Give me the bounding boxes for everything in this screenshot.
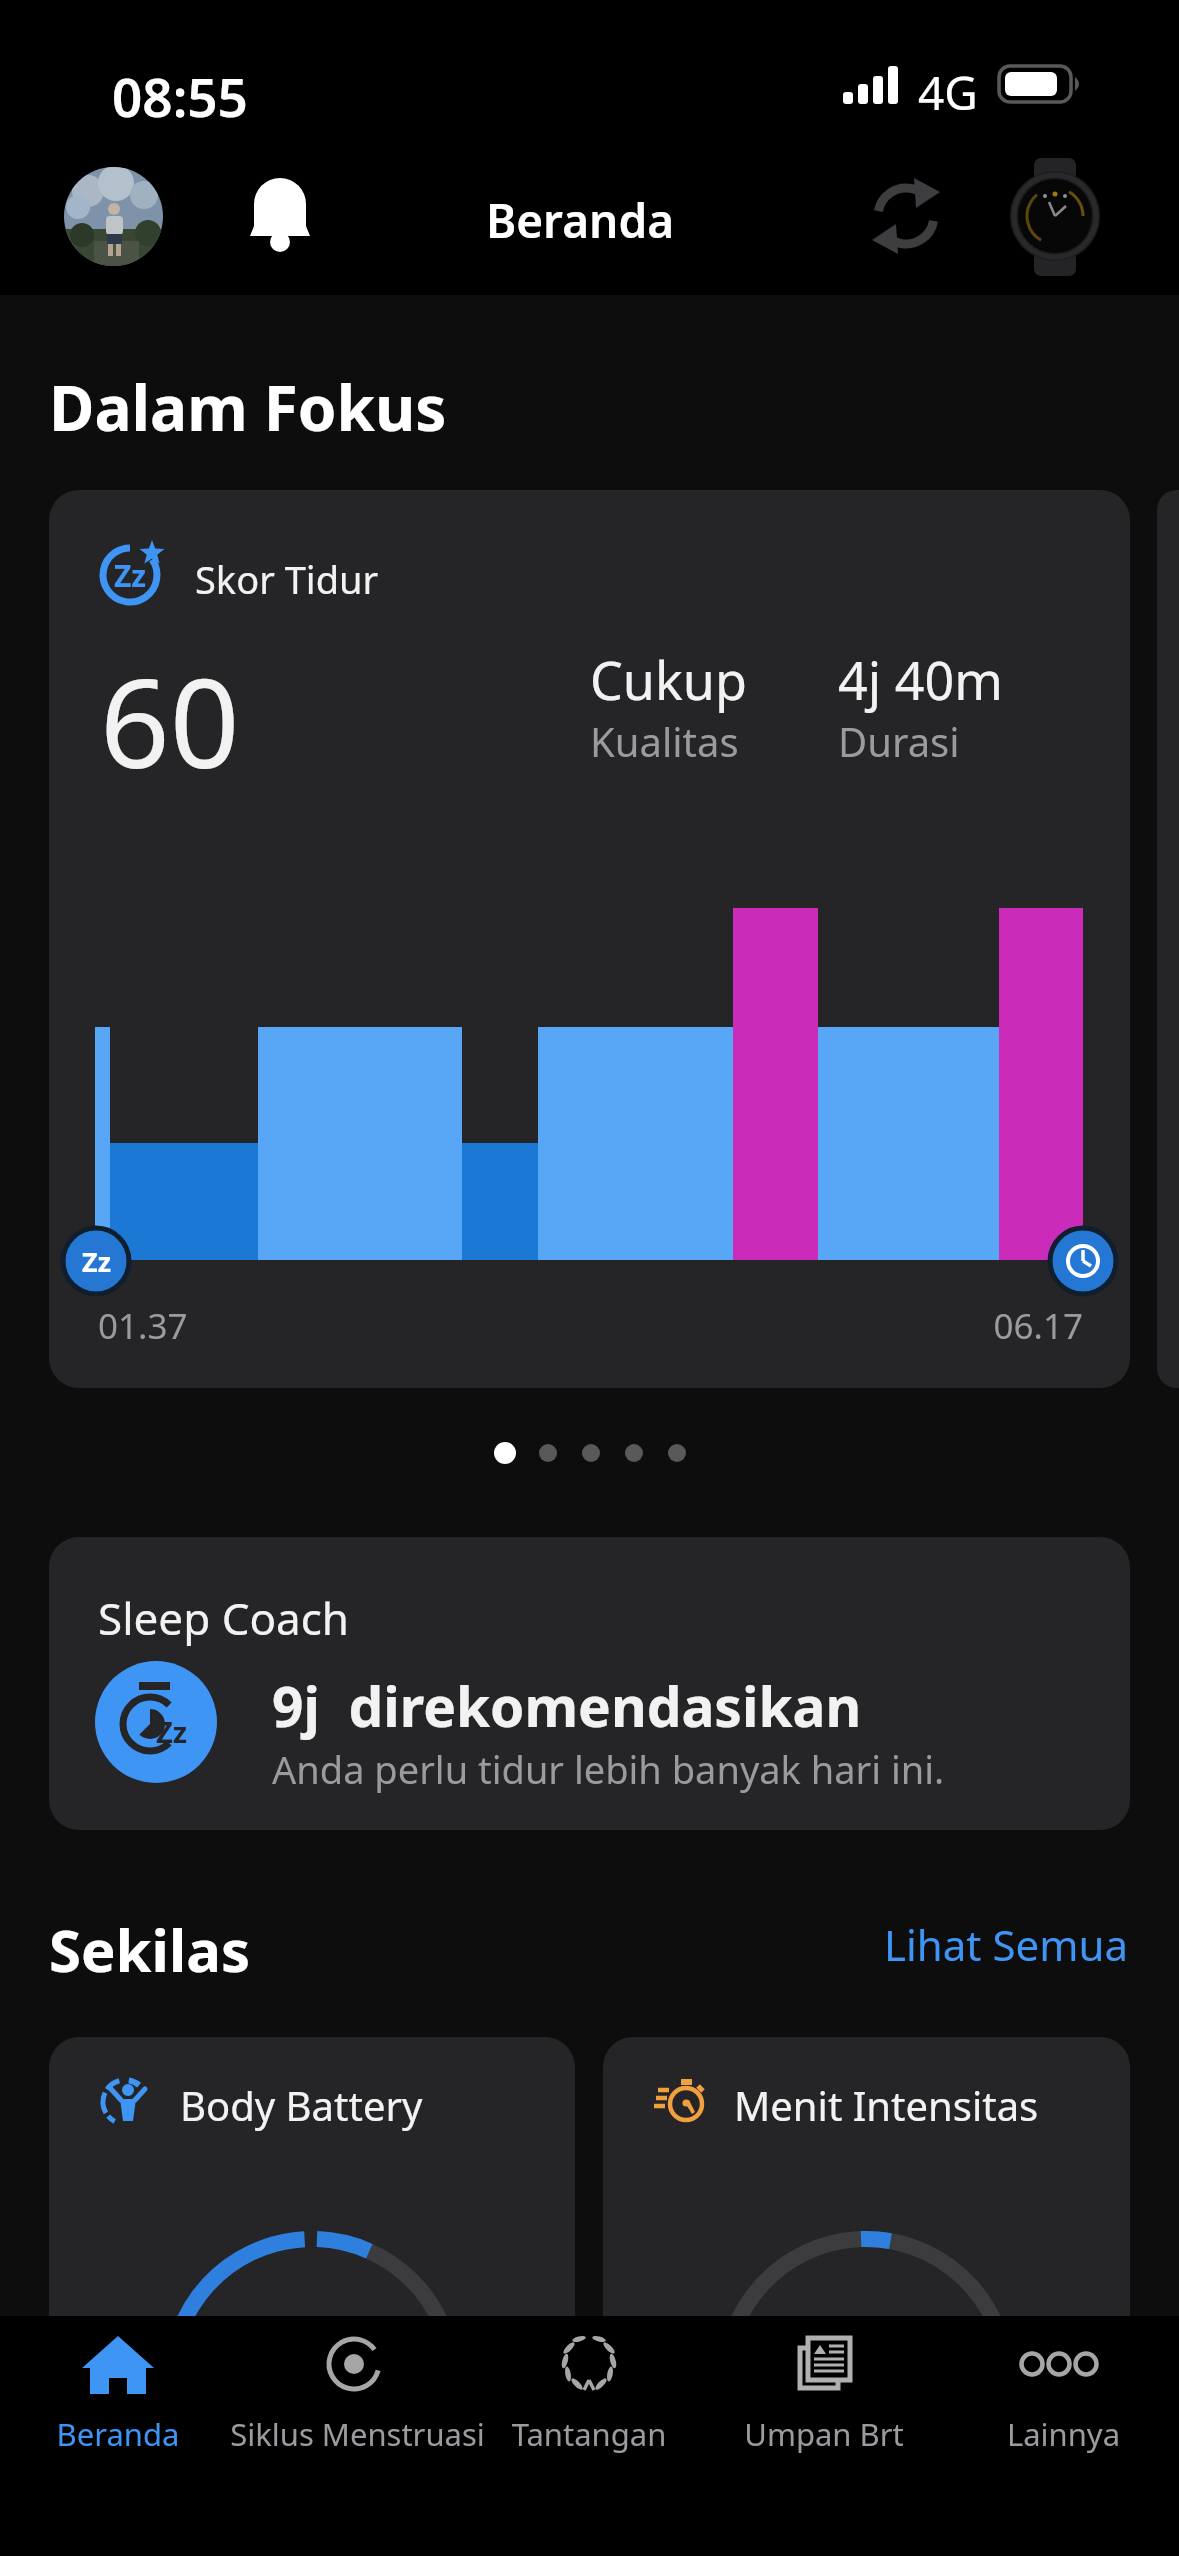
button[interactable] (64, 167, 163, 266)
button[interactable]: Umpan Brt (700, 2316, 948, 2476)
staticText: Menit Intensitas (734, 2078, 1039, 2132)
button[interactable]: Lainnya (948, 2316, 1179, 2476)
staticText: 9j direkomendasikan (272, 1668, 862, 1743)
staticText: Body Battery (180, 2078, 423, 2132)
staticText: Umpan Brt (700, 2413, 948, 2455)
staticText: Sleep Coach (98, 1588, 350, 1648)
staticText: Beranda (0, 2413, 236, 2455)
button[interactable]: Beranda (0, 2316, 236, 2476)
staticText: Beranda (0, 189, 1160, 252)
staticText: Lihat Semua (884, 1916, 1128, 1973)
staticText: Zz (114, 555, 147, 596)
staticText: Lainnya (948, 2413, 1179, 2455)
button[interactable]: Lihat Semua (748, 1912, 1128, 1976)
staticText: Kualitas (590, 714, 739, 768)
button[interactable]: Zz (49, 490, 1130, 1388)
staticText: Zz (156, 1712, 188, 1751)
button[interactable]: Body Battery (49, 2037, 575, 2467)
staticText: Sekilas (49, 1910, 251, 1989)
staticText: 4G (918, 61, 978, 124)
button[interactable]: Siklus Menstruasi (230, 2316, 478, 2476)
staticText: Zz (82, 1243, 111, 1280)
staticText: 4j 40m (838, 644, 1003, 715)
staticText: Skor Tidur (195, 553, 379, 605)
button[interactable] (240, 168, 320, 264)
staticText: Siklus Menstruasi (230, 2413, 478, 2455)
button[interactable] (1008, 158, 1102, 276)
button[interactable]: Menit Intensitas (603, 2037, 1130, 2467)
staticText: Tantangan (478, 2413, 700, 2455)
staticText: Cukup (590, 644, 747, 715)
staticText: 01.37 (98, 1302, 188, 1350)
staticText: 06.17 (939, 1302, 1083, 1350)
button[interactable]: Sleep Coach (49, 1537, 1130, 1830)
staticText: Anda perlu tidur lebih banyak hari ini. (272, 1743, 945, 1795)
button[interactable] (862, 172, 950, 260)
staticText: Durasi (838, 714, 960, 768)
staticText: Dalam Fokus (49, 365, 447, 449)
staticText: 60 (100, 638, 240, 804)
staticText: 08:55 (112, 60, 248, 132)
button[interactable]: Tantangan (478, 2316, 700, 2476)
